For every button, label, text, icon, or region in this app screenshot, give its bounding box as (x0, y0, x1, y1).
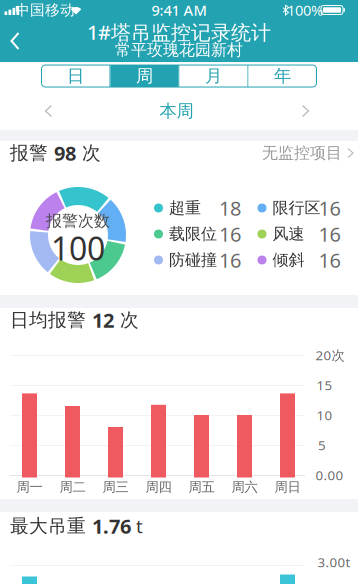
staticText: 周三 (102, 479, 128, 495)
staticText: 载限位 (169, 224, 217, 244)
staticText: 16 (318, 247, 340, 273)
button[interactable]: 周 (110, 65, 178, 87)
staticText: 本周 (159, 100, 193, 122)
staticText: 周五 (188, 479, 214, 495)
staticText: 最大吊重 (10, 514, 92, 537)
staticText: 中国移动 (15, 1, 75, 19)
staticText: 周二 (59, 479, 85, 495)
staticText: 10 (316, 406, 332, 424)
staticText: 20次 (315, 346, 344, 364)
staticText: 5 (318, 436, 326, 454)
button[interactable]: 月 (179, 65, 247, 87)
staticText: 周六 (231, 479, 257, 495)
staticText: 周日 (274, 479, 300, 495)
staticText: 100 (51, 227, 105, 269)
staticText: 1.76 (92, 513, 131, 539)
staticText: 3.00t (317, 553, 350, 571)
staticText: 周四 (145, 479, 171, 495)
staticText: 日 (67, 65, 84, 87)
staticText: 18 (219, 195, 241, 221)
staticText: t (131, 514, 143, 538)
staticText: 15 (316, 376, 332, 394)
staticText: 16 (219, 247, 241, 273)
staticText: 16 (219, 221, 241, 247)
staticText: 0.00 (315, 466, 343, 484)
button[interactable]: 无监控项目 (262, 143, 354, 163)
button[interactable]: 日 (41, 65, 109, 87)
staticText: 次 (114, 308, 139, 331)
staticText: 16 (318, 195, 340, 221)
staticText: 无监控项目 (262, 143, 342, 163)
staticText: 9:41 AM (151, 0, 206, 20)
staticText: 报警 (10, 141, 54, 164)
button[interactable]: Next week (295, 101, 315, 121)
staticText: 次 (76, 141, 101, 164)
staticText: 100% (287, 0, 323, 20)
staticText: 年 (274, 65, 291, 87)
staticText: 超重 (169, 198, 201, 218)
staticText: 日均报警 (10, 308, 92, 331)
staticText: 周一 (16, 479, 42, 495)
staticText: 1#塔吊监控记录统计 (87, 19, 271, 45)
staticText: 限行区 (272, 198, 320, 218)
button[interactable]: Back (0, 20, 32, 62)
staticText: 常平玫瑰花园新村 (115, 40, 243, 60)
button[interactable]: 年 (248, 65, 316, 87)
staticText: 12 (92, 307, 114, 333)
staticText: 风速 (272, 224, 304, 244)
staticText: 16 (318, 221, 340, 247)
staticText: 周 (136, 65, 153, 87)
staticText: 倾斜 (272, 250, 304, 270)
staticText: 防碰撞 (169, 250, 217, 270)
button[interactable]: Previous week (38, 101, 58, 121)
staticText: 月 (205, 65, 222, 87)
staticText: 报警次数 (46, 211, 110, 231)
staticText: 98 (54, 140, 76, 166)
